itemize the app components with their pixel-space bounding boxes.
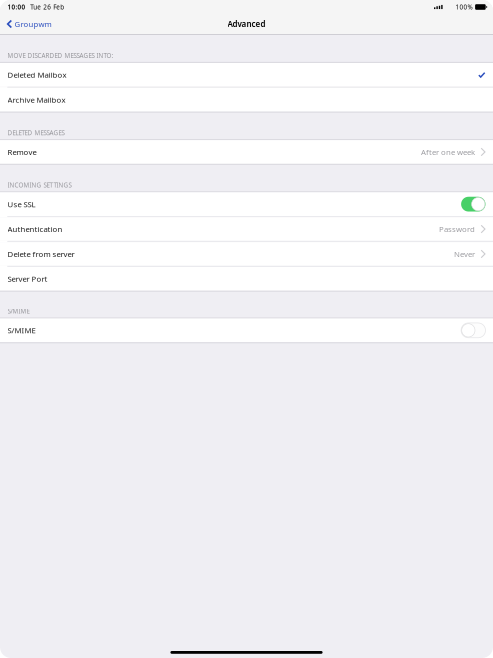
staticText: DELETED MESSAGES [7, 129, 64, 137]
staticText: Deleted Mailbox [7, 70, 66, 80]
button[interactable]: Use SSL [0, 192, 493, 216]
staticText: MOVE DISCARDED MESSAGES INTO: [7, 51, 113, 60]
staticText: Advanced [227, 19, 265, 29]
button[interactable]: S/MIME [0, 318, 493, 342]
button[interactable]: Server Port [0, 267, 493, 291]
button[interactable]: Authentication [0, 217, 493, 241]
staticText: S/MIME [7, 325, 35, 336]
button[interactable]: Delete from server [0, 242, 493, 266]
staticText: Use SSL [7, 199, 35, 209]
staticText: S/MIME [7, 307, 29, 315]
staticText: Tue 26 Feb [30, 3, 64, 11]
button[interactable]: Remove [0, 140, 493, 164]
staticText: After one week [421, 147, 475, 157]
staticText: 10:00 [8, 3, 26, 11]
staticText: Archive Mailbox [7, 94, 65, 105]
staticText: 100% [455, 3, 472, 11]
staticText: Never [454, 249, 475, 259]
staticText: Delete from server [7, 249, 74, 259]
staticText: Authentication [7, 224, 62, 234]
staticText: Password [439, 224, 475, 234]
staticText: Groupwm [14, 19, 51, 29]
button[interactable]: Archive Mailbox [0, 88, 493, 112]
button[interactable]: Groupwm [0, 14, 57, 34]
staticText: Remove [7, 147, 36, 157]
staticText: Server Port [7, 274, 47, 284]
staticText: INCOMING SETTINGS [7, 181, 71, 189]
button[interactable]: Deleted Mailbox [0, 63, 493, 87]
